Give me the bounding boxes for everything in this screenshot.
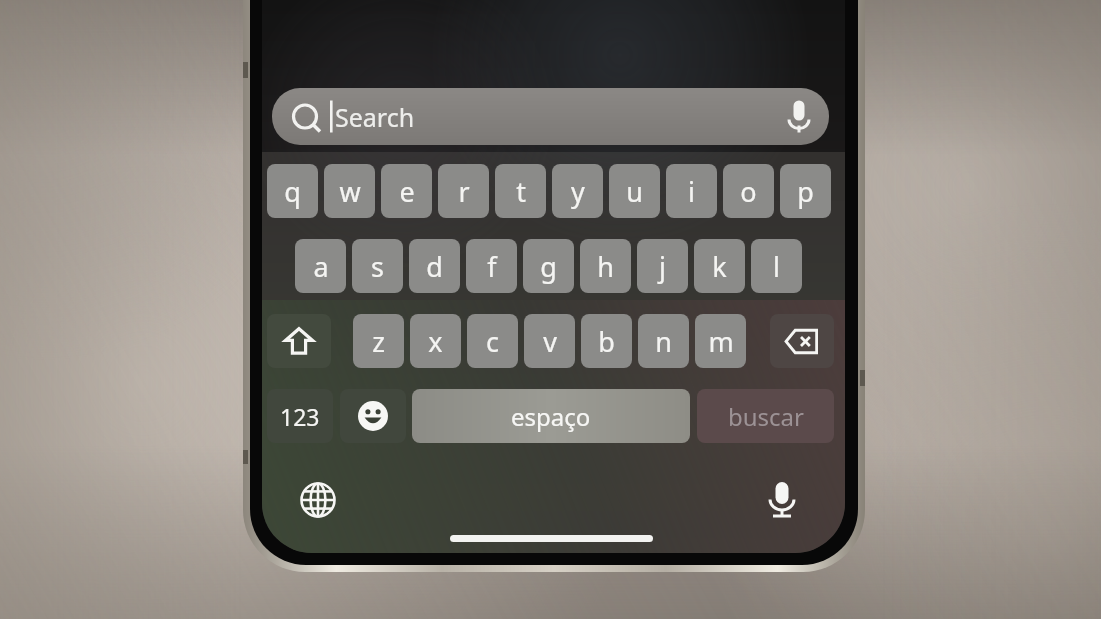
button[interactable]: y bbox=[552, 164, 603, 218]
staticText: y bbox=[571, 173, 585, 210]
button[interactable]: u bbox=[609, 164, 660, 218]
button[interactable]: Search bbox=[272, 88, 829, 145]
staticText: espaço bbox=[511, 400, 591, 433]
staticText: t bbox=[516, 173, 526, 210]
button[interactable]: s bbox=[352, 239, 403, 293]
staticText: r bbox=[458, 173, 470, 210]
button[interactable]: Emoji bbox=[340, 389, 406, 443]
button[interactable]: espaço bbox=[412, 389, 690, 443]
staticText: u bbox=[626, 173, 643, 210]
staticText: o bbox=[740, 173, 757, 210]
button[interactable]: t bbox=[495, 164, 546, 218]
staticText: j bbox=[659, 248, 666, 285]
staticText: v bbox=[543, 323, 557, 360]
button[interactable]: 123 bbox=[267, 389, 333, 443]
staticText: a bbox=[313, 248, 329, 285]
button[interactable]: j bbox=[637, 239, 688, 293]
staticText: c bbox=[486, 323, 499, 360]
staticText: l bbox=[773, 248, 780, 285]
button[interactable]: n bbox=[638, 314, 689, 368]
staticText: n bbox=[655, 323, 672, 360]
staticText: 123 bbox=[280, 401, 320, 432]
button[interactable]: w bbox=[324, 164, 375, 218]
staticText: m bbox=[708, 323, 734, 360]
button[interactable]: Backspace bbox=[770, 314, 834, 368]
button[interactable]: f bbox=[466, 239, 517, 293]
staticText: d bbox=[426, 248, 443, 285]
button[interactable]: h bbox=[580, 239, 631, 293]
button[interactable]: m bbox=[695, 314, 746, 368]
button[interactable]: i bbox=[666, 164, 717, 218]
staticText: s bbox=[371, 248, 384, 285]
button[interactable]: d bbox=[409, 239, 460, 293]
staticText: buscar bbox=[728, 400, 804, 433]
button[interactable]: a bbox=[295, 239, 346, 293]
button[interactable]: g bbox=[523, 239, 574, 293]
button[interactable]: b bbox=[581, 314, 632, 368]
staticText: e bbox=[399, 173, 415, 210]
staticText: i bbox=[688, 173, 695, 210]
staticText: z bbox=[372, 323, 385, 360]
button[interactable]: Shift bbox=[267, 314, 331, 368]
button[interactable]: o bbox=[723, 164, 774, 218]
button[interactable]: Change keyboard language bbox=[293, 475, 343, 525]
button[interactable]: q bbox=[267, 164, 318, 218]
button[interactable]: x bbox=[410, 314, 461, 368]
button[interactable]: l bbox=[751, 239, 802, 293]
staticText: x bbox=[428, 323, 443, 360]
staticText: q bbox=[284, 173, 301, 210]
button[interactable]: k bbox=[694, 239, 745, 293]
button[interactable]: e bbox=[381, 164, 432, 218]
button[interactable]: z bbox=[353, 314, 404, 368]
staticText: f bbox=[487, 248, 497, 285]
staticText: p bbox=[797, 173, 814, 210]
button[interactable]: buscar bbox=[697, 389, 834, 443]
staticText: Search bbox=[335, 100, 415, 134]
staticText: g bbox=[540, 248, 557, 285]
button[interactable]: c bbox=[467, 314, 518, 368]
button[interactable]: r bbox=[438, 164, 489, 218]
staticText: h bbox=[597, 248, 614, 285]
button[interactable]: p bbox=[780, 164, 831, 218]
button[interactable]: Voice input bbox=[756, 473, 808, 525]
staticText: k bbox=[712, 248, 727, 285]
button[interactable]: v bbox=[524, 314, 575, 368]
staticText: b bbox=[598, 323, 615, 360]
staticText: w bbox=[339, 173, 361, 210]
